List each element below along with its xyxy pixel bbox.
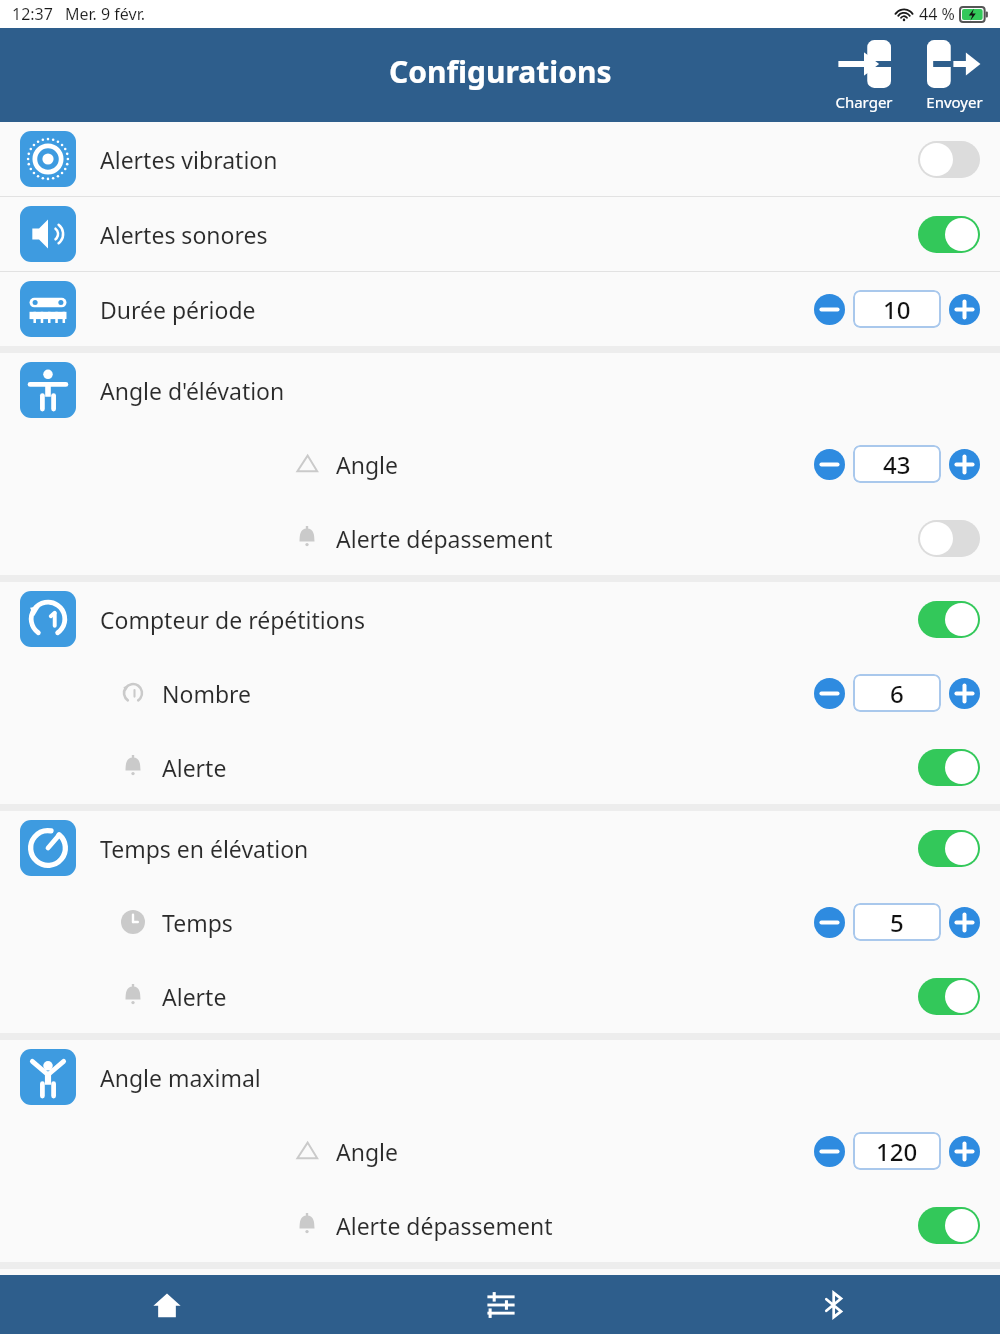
button[interactable]: 6 [853,674,941,712]
button[interactable]: Charger [828,38,900,112]
staticText: Temps en élévation [100,833,309,864]
button[interactable]: Angle [0,427,1000,501]
button[interactable]: Alerte dépassement [0,501,1000,575]
staticText: Configurations [389,51,612,92]
button[interactable]: Durée période [0,272,1000,346]
staticText: 6 [890,677,904,710]
staticText: 43 [883,448,911,481]
button[interactable]: Off [918,141,980,178]
staticText: Alerte dépassement [336,1210,553,1241]
staticText: 12:37 [12,3,53,25]
button[interactable]: Increase [949,907,980,938]
staticText: Alerte [162,752,227,783]
staticText: Alertes vibration [100,144,278,175]
button[interactable]: Alerte dépassement [0,1188,1000,1262]
button[interactable]: Increase [949,294,980,325]
button[interactable]: Temps en élévation [0,811,1000,885]
button[interactable]: Compteur de répétitions [0,582,1000,656]
button[interactable]: Temps [0,885,1000,959]
button[interactable]: 43 [853,445,941,483]
button[interactable]: Alerte [0,959,1000,1033]
staticText: Alerte dépassement [336,523,553,554]
staticText: Angle d'élévation [100,375,285,406]
button[interactable]: Alertes vibration [0,122,1000,196]
staticText: 44 % [919,3,955,25]
button[interactable]: Decrease [814,294,845,325]
staticText: 120 [876,1135,918,1168]
staticText: Alertes sonores [100,219,268,250]
button[interactable]: 120 [853,1132,941,1170]
staticText: 5 [890,906,904,939]
button[interactable]: On [918,216,980,253]
button[interactable]: Increase [949,678,980,709]
button[interactable]: Decrease [814,678,845,709]
staticText: Compteur de répétitions [100,604,365,635]
button[interactable]: On [918,1207,980,1244]
button[interactable]: Off [918,520,980,557]
button[interactable]: Nombre [0,656,1000,730]
button[interactable]: Angle maximal [0,1040,1000,1114]
staticText: Alerte [162,981,227,1012]
staticText: Envoyer [926,92,983,112]
button[interactable]: 10 [853,290,941,328]
button[interactable]: Increase [949,449,980,480]
staticText: 10 [883,293,911,326]
button[interactable]: On [918,749,980,786]
button[interactable]: Bluetooth [667,1275,1000,1334]
staticText: Nombre [162,678,252,709]
button[interactable]: Decrease [814,1136,845,1167]
button[interactable]: Angle [0,1114,1000,1188]
button[interactable]: 5 [853,903,941,941]
button[interactable]: Alertes sonores [0,197,1000,271]
staticText: Charger [835,92,893,112]
button[interactable]: On [918,830,980,867]
staticText: Temps [162,907,233,938]
button[interactable]: Envoyer [918,38,990,112]
button[interactable]: Settings [334,1275,667,1334]
staticText: Angle [336,1136,398,1167]
button[interactable]: Home [0,1275,334,1334]
button[interactable]: Increase [949,1136,980,1167]
staticText: Angle maximal [100,1062,261,1093]
button[interactable]: On [918,978,980,1015]
staticText: Mer. 9 févr. [65,3,146,25]
button[interactable]: Angle d'élévation [0,353,1000,427]
button[interactable]: Decrease [814,449,845,480]
button[interactable]: Decrease [814,907,845,938]
button[interactable]: On [918,601,980,638]
staticText: Durée période [100,294,256,325]
button[interactable]: Alerte [0,730,1000,804]
staticText: Angle [336,449,398,480]
